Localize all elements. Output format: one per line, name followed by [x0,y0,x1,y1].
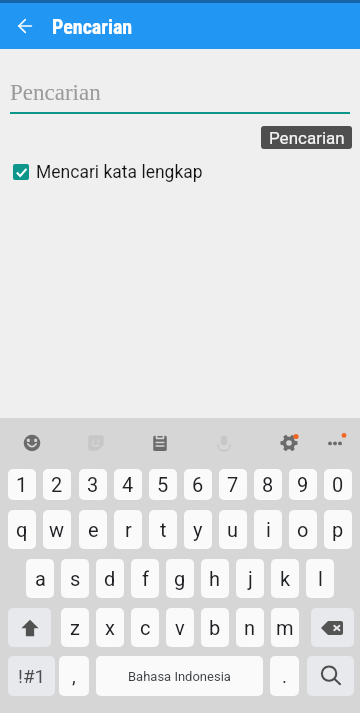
staticText: q [16,518,28,541]
button[interactable]: Shift [8,608,51,647]
button[interactable]: y [184,510,212,549]
staticText: i [266,518,271,541]
button[interactable]: Voice input [204,423,244,463]
button[interactable]: v [166,608,194,647]
button[interactable]: Pencarian [261,126,352,149]
staticText: m [276,616,294,639]
staticText: 1 [16,473,28,496]
staticText: b [209,616,221,639]
button[interactable]: a [26,559,54,598]
staticText: l [318,567,323,590]
staticText: g [174,567,186,590]
button[interactable]: q [8,510,36,549]
staticText: x [105,616,115,639]
button[interactable]: o [289,510,317,549]
button[interactable]: 3 [79,469,107,500]
staticText: 4 [122,473,134,496]
button[interactable]: k [271,559,299,598]
staticText: d [104,567,116,590]
button[interactable]: i [254,510,282,549]
button[interactable]: 8 [254,469,282,500]
button[interactable]: w [43,510,71,549]
staticText: 9 [297,473,309,496]
staticText: k [280,567,291,590]
button[interactable]: c [131,608,159,647]
button[interactable]: 9 [289,469,317,500]
button[interactable]: 5 [149,469,177,500]
staticText: Pencarian [52,15,133,38]
staticText: Pencarian [10,80,101,105]
staticText: a [35,567,46,590]
button[interactable]: Clipboard [140,423,180,463]
staticText: c [140,616,151,639]
staticText: Mencari kata lengkap [36,162,203,183]
button[interactable]: Search [307,656,354,696]
staticText: 3 [87,473,99,496]
staticText: , [72,665,76,687]
staticText: e [88,518,99,541]
staticText: n [244,616,256,639]
button[interactable]: Mencari kata lengkap [8,159,203,185]
button[interactable]: t [149,510,177,549]
button[interactable]: 4 [114,469,142,500]
staticText: p [332,518,344,541]
staticText: v [175,616,185,639]
button[interactable]: d [96,559,124,598]
staticText: 5 [157,473,169,496]
button[interactable]: Bahasa Indonesia [96,656,263,696]
button[interactable]: n [236,608,264,647]
button[interactable]: 7 [219,469,247,500]
button[interactable]: , [59,656,89,696]
button[interactable]: b [201,608,229,647]
staticText: j [248,567,253,590]
button[interactable]: u [219,510,247,549]
staticText: s [70,567,81,590]
staticText: 6 [192,473,204,496]
button[interactable]: f [131,559,159,598]
button[interactable]: m [271,608,299,647]
button[interactable]: x [96,608,124,647]
button[interactable]: Emoji [12,423,52,463]
button[interactable]: . [270,656,299,696]
staticText: 8 [262,473,274,496]
button[interactable]: 6 [184,469,212,500]
button[interactable]: 0 [324,469,352,500]
button[interactable]: j [236,559,264,598]
staticText: z [70,616,80,639]
staticText: w [49,518,65,541]
staticText: . [282,665,288,687]
button[interactable]: More options [315,423,355,463]
button[interactable]: s [61,559,89,598]
button[interactable]: h [201,559,229,598]
button[interactable]: Settings [269,423,309,463]
staticText: h [209,567,221,590]
button[interactable]: p [324,510,352,549]
staticText: o [297,518,309,541]
staticText: r [125,518,132,541]
button[interactable]: z [61,608,89,647]
staticText: f [142,567,149,590]
button[interactable]: 1 [8,469,36,500]
button[interactable]: Backspace [311,608,354,647]
button[interactable]: Stickers [76,423,116,463]
button[interactable]: e [79,510,107,549]
staticText: y [193,518,203,541]
staticText: u [227,518,239,541]
button[interactable]: r [114,510,142,549]
staticText: t [160,518,167,541]
button[interactable]: !#1 [8,656,55,696]
button[interactable]: g [166,559,194,598]
staticText: 0 [332,473,344,496]
staticText: 7 [227,473,239,496]
staticText: Bahasa Indonesia [128,669,231,684]
button[interactable]: 2 [43,469,71,500]
button[interactable]: l [306,559,334,598]
staticText: Pencarian [269,128,345,148]
staticText: !#1 [18,665,46,687]
button[interactable]: Back [8,9,42,43]
staticText: 2 [51,473,63,496]
